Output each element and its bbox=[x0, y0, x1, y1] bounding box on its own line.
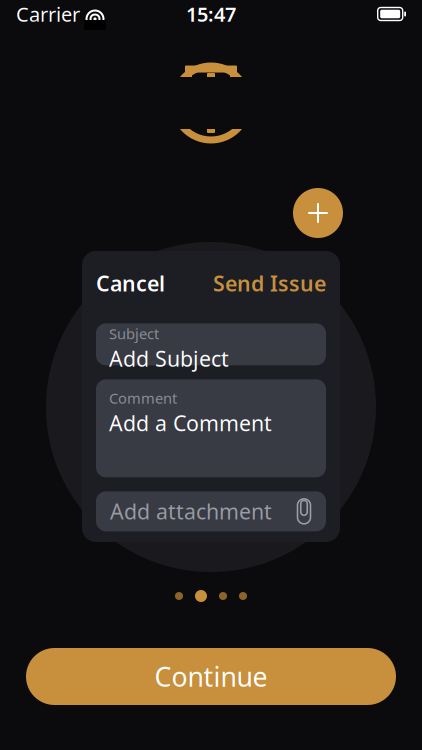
staticText: Send Issue bbox=[213, 269, 326, 297]
staticText: Add Subject bbox=[109, 344, 229, 373]
staticText: Add a Comment bbox=[109, 409, 272, 437]
staticText: Add attachment bbox=[110, 497, 272, 525]
button[interactable]: Cancel bbox=[96, 269, 165, 297]
staticText: Carrier bbox=[16, 1, 80, 27]
button[interactable]: Add attachment bbox=[96, 491, 326, 531]
button[interactable]: Subject bbox=[96, 323, 326, 365]
button[interactable]: Comment bbox=[96, 379, 326, 477]
staticText: Comment bbox=[109, 388, 177, 408]
staticText: Subject bbox=[109, 324, 159, 343]
staticText: Cancel bbox=[96, 269, 165, 297]
staticText: 15:47 bbox=[186, 1, 236, 27]
button[interactable]: Add issue bbox=[293, 188, 343, 238]
button[interactable]: Continue bbox=[26, 648, 396, 705]
staticText: Continue bbox=[154, 659, 267, 694]
button[interactable]: Send Issue bbox=[213, 269, 326, 297]
